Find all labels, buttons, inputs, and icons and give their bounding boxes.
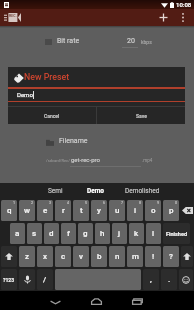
staticText: 0 (175, 201, 178, 205)
staticText: New Preset (24, 72, 70, 82)
button[interactable]: z (19, 246, 35, 267)
staticText: u (115, 206, 120, 215)
staticText: c (61, 252, 66, 261)
button[interactable]: Cancel (8, 107, 96, 124)
staticText: Finished (166, 231, 187, 237)
button[interactable]: Demolished (115, 183, 169, 199)
button[interactable]: Save (97, 107, 185, 124)
button[interactable]: l (146, 223, 161, 244)
staticText: 7 (121, 201, 124, 205)
staticText: 8 (139, 201, 142, 205)
staticText: s (32, 229, 37, 238)
staticText: p (169, 206, 174, 215)
button[interactable]: c (55, 246, 71, 267)
button[interactable] (181, 200, 193, 221)
staticText: a (15, 229, 20, 238)
button[interactable]: o (145, 200, 161, 221)
button[interactable]: Semi (33, 183, 77, 199)
button[interactable]: Recent apps (125, 291, 150, 310)
staticText: q (7, 206, 12, 215)
staticText: 6 (103, 201, 106, 205)
button[interactable]: k (129, 223, 144, 244)
button[interactable] (179, 269, 193, 290)
button[interactable]: h (95, 223, 110, 244)
staticText: d (49, 229, 54, 238)
staticText: 9 (157, 201, 160, 205)
button[interactable]: m (127, 246, 143, 267)
button[interactable]: f (61, 223, 76, 244)
staticText: x (43, 252, 48, 261)
staticText: Bit rate (57, 37, 80, 45)
staticText: b (97, 252, 102, 261)
staticText: ?123 (3, 277, 15, 283)
button[interactable]: , (143, 269, 159, 290)
button[interactable] (1, 246, 17, 267)
staticText: 10:08 (176, 1, 192, 8)
button[interactable]: d (44, 223, 59, 244)
button[interactable]: w (19, 200, 35, 221)
button[interactable]: t (73, 200, 89, 221)
button[interactable]: g (78, 223, 93, 244)
staticText: /sdcard/Rec/ (46, 158, 70, 163)
staticText: , (150, 275, 152, 284)
button[interactable]: Demo (77, 183, 115, 199)
staticText: ! (152, 252, 155, 261)
button[interactable]: q (1, 200, 17, 221)
button[interactable]: j (112, 223, 127, 244)
staticText: i (134, 206, 137, 215)
button[interactable]: Home (84, 291, 109, 310)
staticText: l (152, 229, 155, 238)
button[interactable]: s (27, 223, 42, 244)
staticText: 20 (127, 37, 135, 45)
button[interactable]: r (55, 200, 71, 221)
staticText: f (67, 229, 70, 238)
staticText: 1 (13, 201, 16, 205)
staticText: Filename (59, 137, 88, 145)
button[interactable]: a (10, 223, 25, 244)
button[interactable]: b (91, 246, 107, 267)
staticText: Demolished (125, 187, 160, 195)
button[interactable]: More options (174, 9, 192, 26)
staticText: j (118, 229, 121, 238)
button[interactable]: ? (163, 246, 179, 267)
button[interactable]: ?123 (1, 269, 17, 290)
staticText: . (168, 275, 171, 284)
staticText: 3 (49, 201, 52, 205)
button[interactable]: y (91, 200, 107, 221)
staticText: v (79, 252, 83, 261)
staticText: e (43, 206, 48, 215)
staticText: y (97, 206, 101, 215)
button[interactable]: v (73, 246, 89, 267)
button[interactable]: e (37, 200, 53, 221)
staticText: t (80, 206, 83, 215)
staticText: o (151, 206, 156, 215)
staticText: n (115, 252, 120, 261)
button[interactable]: i (127, 200, 143, 221)
button[interactable]: . (161, 269, 177, 290)
staticText: w (24, 206, 30, 215)
button[interactable]: Open navigation drawer (4, 9, 34, 26)
staticText: Save (136, 113, 147, 119)
staticText: Cancel (44, 113, 60, 119)
button[interactable]: / (37, 269, 53, 290)
button[interactable]: p (163, 200, 179, 221)
staticText: m (132, 252, 139, 261)
button[interactable]: ! (145, 246, 161, 267)
button[interactable] (19, 269, 35, 290)
staticText: Demo (17, 91, 33, 98)
staticText: z (25, 252, 30, 261)
button[interactable]: x (37, 246, 53, 267)
staticText: ? (169, 252, 173, 261)
button[interactable]: Back (43, 291, 68, 310)
staticText: REC. (9, 14, 17, 18)
button[interactable]: u (109, 200, 125, 221)
staticText: r (62, 206, 65, 215)
staticText: kbps (141, 39, 152, 45)
button[interactable]: Finished (163, 223, 190, 244)
staticText: 2 (31, 201, 34, 205)
button[interactable] (181, 246, 193, 267)
button[interactable]: n (109, 246, 125, 267)
staticText: .mp4 (142, 158, 153, 163)
button[interactable]: Add preset (154, 9, 172, 26)
